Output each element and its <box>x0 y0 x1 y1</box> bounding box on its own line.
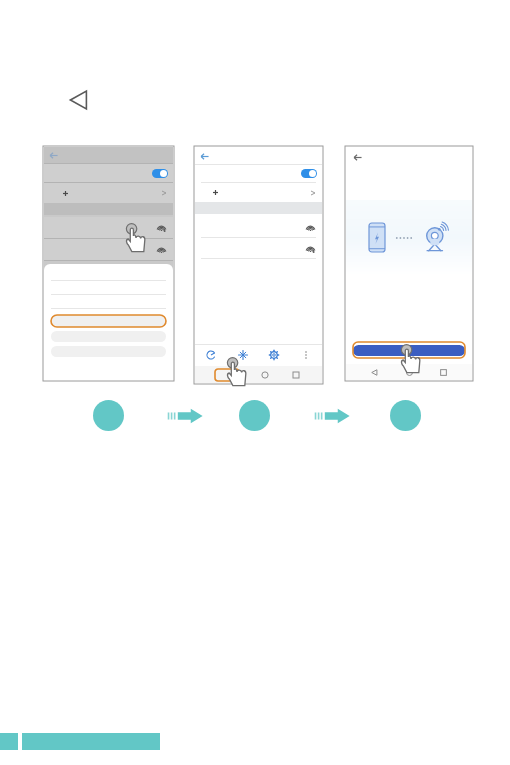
button[interactable]: Back <box>215 369 239 381</box>
other: Wi-Fi network <box>157 245 166 254</box>
button[interactable]: Refresh <box>203 347 219 363</box>
button[interactable]: Back <box>369 367 380 378</box>
button[interactable]: Recents <box>438 367 449 378</box>
button[interactable]: Back <box>353 153 362 162</box>
button[interactable]: Wi-Fi network <box>44 217 173 238</box>
button[interactable]: Home <box>259 369 271 381</box>
button[interactable] <box>44 183 173 203</box>
button[interactable] <box>195 183 322 202</box>
button[interactable] <box>51 315 166 327</box>
button[interactable]: Home <box>404 367 415 378</box>
button[interactable]: Wi-Fi network <box>44 239 173 260</box>
button[interactable] <box>390 400 421 431</box>
button[interactable]: Wi-Fi network <box>195 238 322 258</box>
button[interactable]: Back <box>49 151 58 160</box>
button[interactable] <box>44 164 173 182</box>
button[interactable] <box>239 400 270 431</box>
button[interactable]: Add device <box>235 347 251 363</box>
button[interactable] <box>93 400 124 431</box>
button[interactable]: Back <box>200 152 209 161</box>
button[interactable]: Settings <box>266 347 282 363</box>
button[interactable] <box>353 342 465 358</box>
button[interactable]: More options <box>298 347 314 363</box>
button[interactable]: Back <box>64 84 96 116</box>
button[interactable] <box>195 165 322 182</box>
other: Wi-Fi network <box>306 244 315 253</box>
button[interactable]: Recents <box>290 369 302 381</box>
other: Wi-Fi network <box>306 223 315 232</box>
other: Wi-Fi network <box>157 223 166 232</box>
button[interactable]: Wi-Fi network <box>195 217 322 237</box>
